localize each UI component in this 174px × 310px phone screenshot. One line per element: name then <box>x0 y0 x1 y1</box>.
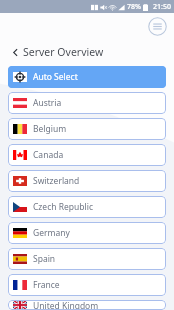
button[interactable]: Spain <box>8 248 166 270</box>
button[interactable]: Austria <box>8 92 166 114</box>
button[interactable]: France <box>8 274 166 296</box>
staticText: Austria <box>33 97 62 109</box>
staticText: Server Overview <box>23 45 104 59</box>
button[interactable]: Switzerland <box>8 170 166 192</box>
button[interactable]: Belgium <box>8 118 166 140</box>
staticText: 78% <box>127 2 141 12</box>
staticText: United Kingdom <box>33 300 99 310</box>
staticText: Germany <box>33 227 70 239</box>
button[interactable]: Germany <box>8 222 166 244</box>
staticText: Auto Select <box>33 71 78 83</box>
button[interactable]: Czech Republic <box>8 196 166 218</box>
staticText: Czech Republic <box>33 201 93 213</box>
staticText: France <box>33 279 60 291</box>
button[interactable]: Auto Select <box>8 66 166 88</box>
staticText: 21:50 <box>153 2 171 12</box>
button[interactable]: United Kingdom <box>8 300 166 310</box>
staticText: Canada <box>33 149 64 161</box>
button[interactable]: Canada <box>8 144 166 166</box>
button[interactable]: Menu <box>148 17 167 36</box>
staticText: Belgium <box>33 123 67 135</box>
staticText: Spain <box>33 253 56 265</box>
button[interactable]: Back <box>9 46 21 58</box>
staticText: Switzerland <box>33 175 80 187</box>
